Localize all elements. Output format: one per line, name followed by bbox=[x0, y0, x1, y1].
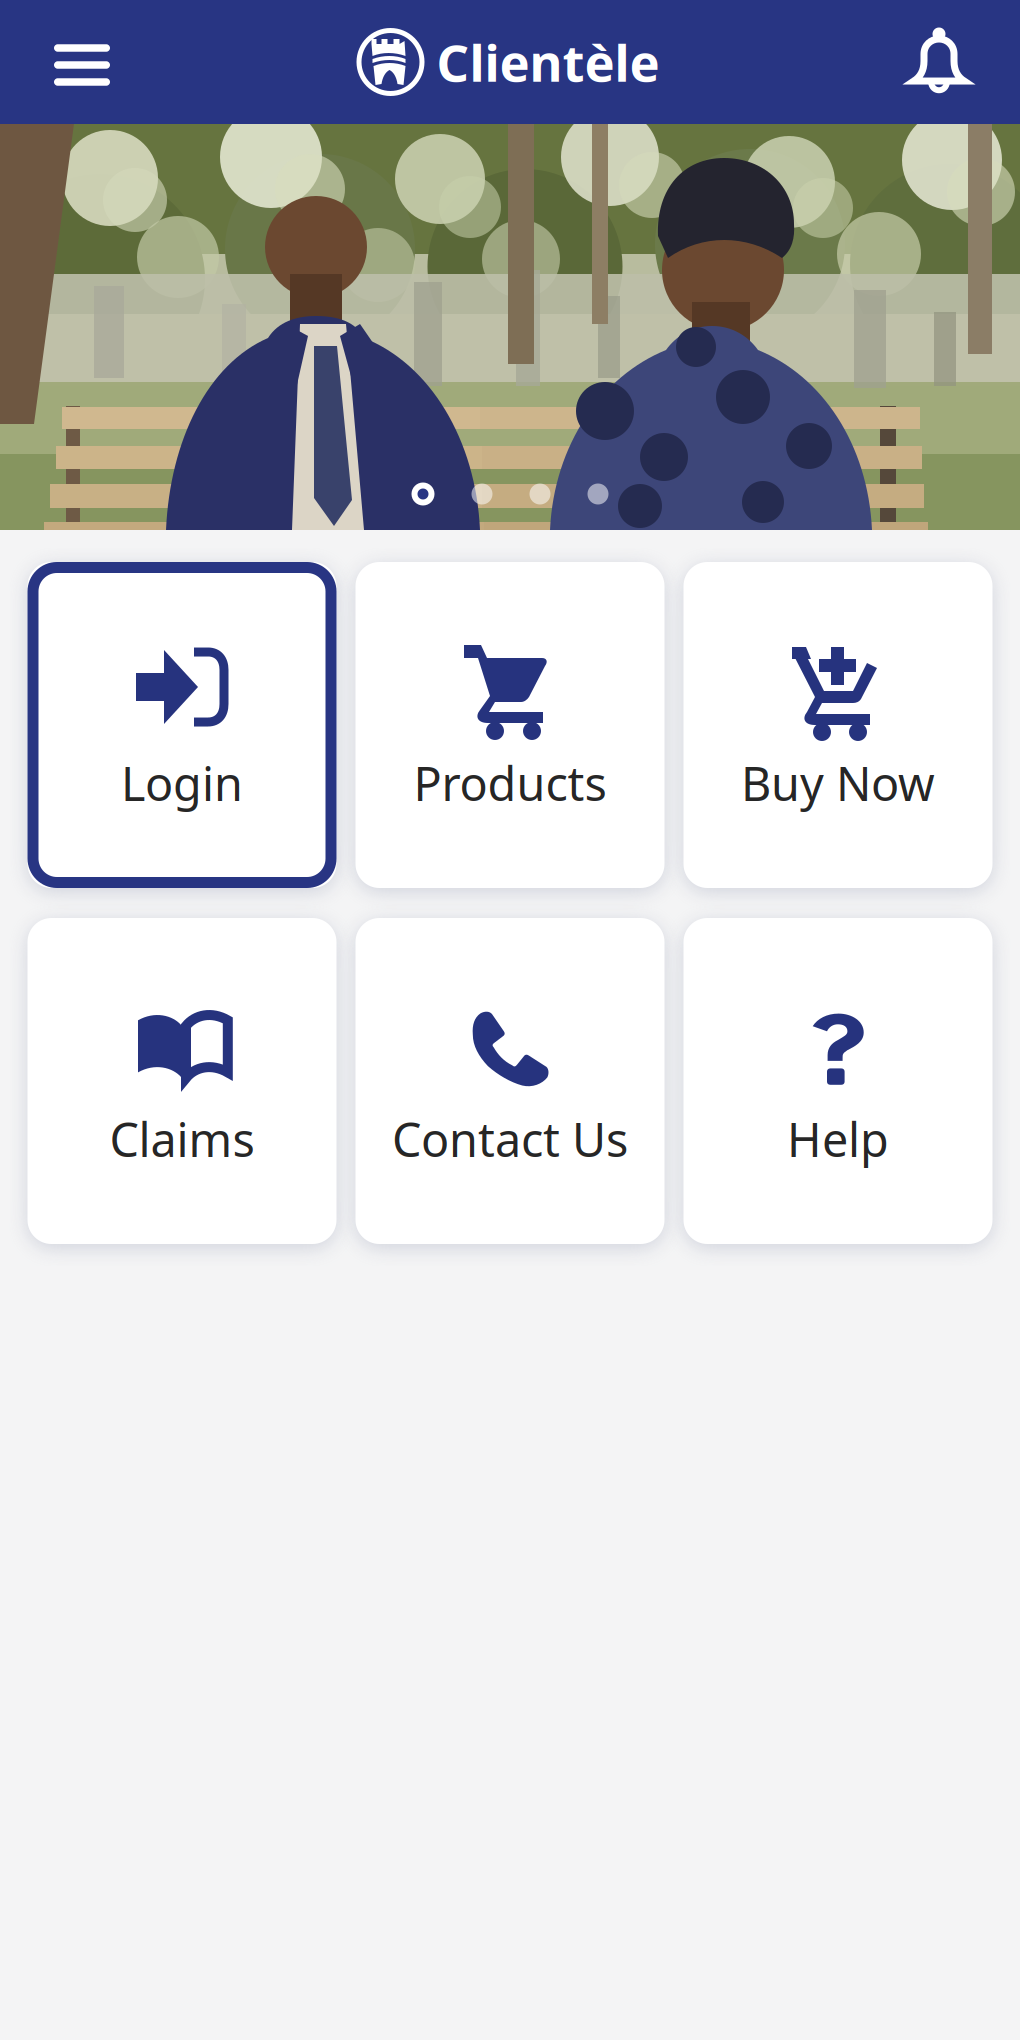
button[interactable]: Notifications bbox=[880, 17, 1020, 107]
staticText: Help bbox=[787, 1108, 889, 1170]
button[interactable]: Products bbox=[355, 562, 664, 888]
staticText: Clientèle bbox=[436, 28, 659, 96]
button[interactable]: Login bbox=[27, 562, 336, 888]
button[interactable]: Help bbox=[683, 918, 992, 1244]
staticText: Products bbox=[413, 752, 606, 814]
staticText: Contact Us bbox=[392, 1108, 628, 1170]
button[interactable]: Contact Us bbox=[355, 918, 664, 1244]
staticText: Claims bbox=[109, 1108, 254, 1170]
button[interactable]: Claims bbox=[27, 918, 336, 1244]
button[interactable]: Buy Now bbox=[683, 562, 992, 888]
button[interactable]: Menu bbox=[0, 13, 136, 110]
staticText: Buy Now bbox=[741, 752, 935, 814]
staticText: Login bbox=[121, 752, 243, 814]
